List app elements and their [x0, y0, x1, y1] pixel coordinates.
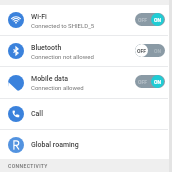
staticText: Bluetooth	[31, 44, 62, 52]
button[interactable]: Wi-Fi	[0, 5, 172, 35]
button[interactable]: Global roaming	[0, 130, 172, 159]
staticText: ON	[154, 17, 161, 23]
button[interactable]: Mobile data	[0, 67, 172, 98]
staticText: OFF	[138, 48, 147, 54]
staticText: Call	[31, 110, 43, 118]
button[interactable]: Switch off	[135, 44, 165, 57]
staticText: OFF	[138, 79, 147, 85]
staticText: Mobile data	[31, 75, 69, 83]
button[interactable]: Call	[0, 99, 172, 129]
button[interactable]: Switch on	[135, 75, 165, 88]
staticText: CONNECTIVITY	[8, 163, 48, 169]
button[interactable]: Bluetooth	[0, 36, 172, 66]
staticText: ON	[154, 79, 161, 85]
staticText: ON	[154, 17, 161, 23]
staticText: OFF	[137, 48, 146, 54]
staticText: OFF	[138, 17, 147, 23]
staticText: Connection allowed	[31, 84, 84, 91]
staticText: ON	[154, 79, 161, 85]
staticText: ON	[154, 48, 161, 54]
staticText: Connected to SHIELD_5	[31, 22, 95, 29]
staticText: Wi-Fi	[31, 13, 47, 21]
button[interactable]: Switch on	[135, 13, 165, 26]
staticText: Global roaming	[31, 141, 79, 149]
staticText: Connection not allowed	[31, 53, 94, 60]
